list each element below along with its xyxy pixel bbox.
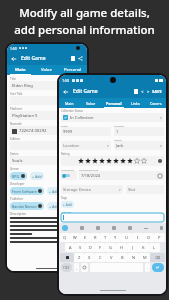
button[interactable]: A — [65, 243, 75, 252]
button[interactable]: Backspace — [150, 253, 165, 262]
button[interactable]: W — [70, 233, 80, 242]
button[interactable]: 9999 — [61, 127, 111, 136]
button[interactable]: PlayStation 5 — [10, 111, 84, 120]
button[interactable]: Keyboard tool — [128, 226, 132, 230]
button[interactable]: Keyboard tool — [96, 226, 100, 230]
button[interactable]: 722674 00292 — [10, 126, 84, 135]
button[interactable]: D — [85, 243, 95, 252]
button[interactable]: Slot — [126, 185, 164, 194]
button[interactable]: J — [127, 243, 138, 252]
button[interactable]: O — [143, 233, 154, 242]
staticText: < — [141, 89, 144, 95]
button[interactable]: L — [149, 243, 160, 252]
staticText: . — [147, 265, 149, 270]
button[interactable]: Share — [77, 55, 84, 62]
button[interactable]: M — [139, 253, 150, 262]
button[interactable]: U — [121, 233, 132, 242]
staticText: ?123 — [63, 266, 70, 270]
button[interactable]: K — [138, 243, 149, 252]
button[interactable]: Jack — [114, 141, 164, 150]
button[interactable]: Voice input — [62, 225, 68, 231]
button[interactable]: Location — [61, 141, 111, 150]
staticText: Tags — [61, 196, 67, 200]
staticText: 9999 — [63, 129, 73, 134]
staticText: B — [121, 255, 124, 260]
button[interactable]: From Software — [10, 187, 44, 195]
staticText: 7/18/2024 — [81, 173, 100, 178]
staticText: > — [147, 89, 150, 95]
button[interactable]: X — [84, 253, 95, 262]
button[interactable]: Covers — [145, 98, 166, 108]
button[interactable]: + Add — [47, 187, 61, 195]
button[interactable]: Shift — [60, 253, 74, 262]
button[interactable]: Storage Device — [61, 185, 123, 194]
button[interactable]: Personal — [101, 98, 126, 108]
button[interactable]: + Add — [47, 202, 61, 210]
button[interactable]: Save — [132, 88, 139, 95]
button[interactable]: B — [117, 253, 128, 262]
button[interactable]: Links — [126, 98, 145, 108]
button[interactable]: T — [100, 233, 110, 242]
button[interactable]: In Collection — [61, 113, 164, 122]
staticText: Edit Game — [73, 88, 98, 95]
staticText: O — [147, 235, 151, 240]
button[interactable]: RPG — [10, 172, 27, 180]
button[interactable]: N — [128, 253, 139, 262]
button[interactable]: P — [154, 233, 165, 242]
button[interactable]: I — [132, 233, 143, 242]
button[interactable]: , — [74, 263, 79, 272]
button[interactable]: Souls — [10, 156, 84, 165]
button[interactable]: S — [75, 243, 85, 252]
button[interactable]: V — [106, 253, 117, 262]
staticText: Y — [114, 235, 117, 240]
button[interactable]: Next — [145, 89, 151, 95]
staticText: v — [107, 144, 109, 148]
button[interactable]: Z — [74, 253, 84, 262]
button[interactable]: + Add — [30, 172, 44, 180]
button[interactable]: SAVE — [151, 87, 163, 96]
button[interactable]: G — [105, 243, 116, 252]
button[interactable]: Previous — [139, 89, 145, 95]
button[interactable]: E — [80, 233, 90, 242]
button[interactable]: C — [95, 253, 106, 262]
button[interactable]: Numbers — [61, 263, 72, 272]
button[interactable]: Settings — [160, 226, 163, 230]
button[interactable]: + Add — [61, 201, 74, 208]
button[interactable]: Main — [7, 65, 33, 75]
button[interactable]: R — [90, 233, 100, 242]
button[interactable]: Value — [33, 65, 59, 75]
button[interactable] — [10, 96, 84, 105]
button[interactable]: Emoji — [81, 263, 88, 272]
staticText: x — [80, 158, 82, 163]
button[interactable]: 1 — [114, 127, 164, 136]
button[interactable]: v — [10, 141, 84, 150]
button[interactable]: 7/18/2024 — [79, 171, 164, 180]
button[interactable]: Y — [110, 233, 121, 242]
button[interactable]: Q — [60, 233, 70, 242]
staticText: RPG — [12, 174, 20, 179]
button[interactable]: F — [95, 243, 105, 252]
button[interactable]: Back — [62, 88, 70, 96]
button[interactable]: Keyboard tool — [80, 226, 84, 230]
staticText: 1:50 — [10, 46, 17, 51]
button[interactable]: Value — [80, 98, 101, 108]
button[interactable] — [61, 213, 164, 222]
staticText: Jack — [116, 143, 124, 148]
button[interactable]: . — [145, 263, 150, 272]
button[interactable]: Personal — [59, 65, 87, 75]
button[interactable]: Completed toggle — [61, 171, 77, 180]
button[interactable]: Save — [69, 55, 76, 62]
staticText: H — [120, 245, 123, 250]
button[interactable]: Elden Ring — [10, 81, 84, 90]
staticText: Bandai Namco — [12, 204, 37, 209]
button[interactable]: Bandai Namco — [10, 202, 44, 210]
button[interactable]: Enter — [152, 263, 164, 272]
button[interactable]: Back — [10, 55, 18, 63]
button[interactable] — [61, 156, 164, 166]
button[interactable]: Keyboard tool — [112, 226, 116, 230]
staticText: x — [80, 113, 82, 118]
staticText: E — [84, 235, 87, 240]
button[interactable]: Main — [59, 98, 80, 108]
button[interactable]: H — [116, 243, 127, 252]
